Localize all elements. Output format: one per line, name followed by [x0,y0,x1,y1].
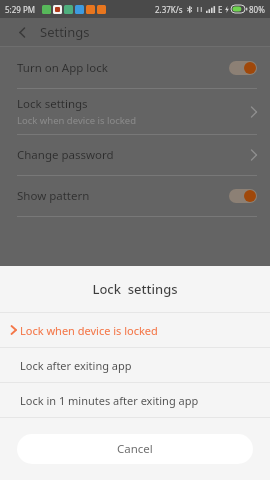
staticText: Lock when device is locked [17,114,137,127]
staticText: Cancel [117,441,153,457]
staticText: 2.37K/s [155,4,183,15]
staticText: 80% [249,4,265,15]
button[interactable]: Lock in 1 minutes after exiting app [0,383,270,417]
button[interactable]: Turn on App lock [0,48,270,88]
button[interactable]: Lock when device is locked [0,313,270,347]
staticText: 5:29 PM [5,4,36,15]
button[interactable]: Lock settings [0,89,270,134]
button[interactable]: Lock after exiting app [0,348,270,382]
button[interactable]: Cancel [17,434,253,464]
staticText: Lock after exiting app [20,358,132,373]
staticText: Lock when device is locked [20,323,158,338]
staticText: Lock settings [17,96,88,112]
button[interactable]: Show pattern [0,176,270,216]
staticText: Lock in 1 minutes after exiting app [20,393,199,408]
button[interactable]: Back [12,22,32,42]
staticText: Turn on App lock [17,60,108,76]
staticText: Lock settings [92,280,178,298]
staticText: E [218,4,223,15]
button[interactable]: Change password [0,135,270,175]
staticText: Show pattern [17,188,90,204]
staticText: Settings [40,23,90,41]
staticText: Change password [17,147,114,163]
